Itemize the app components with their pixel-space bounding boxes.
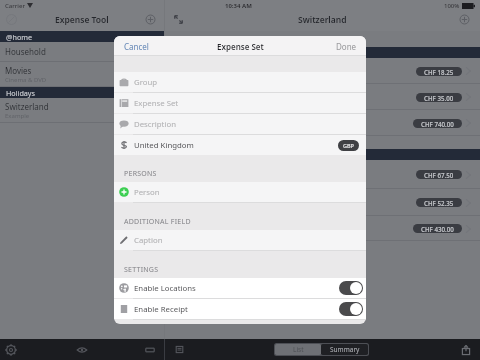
button[interactable]: List <box>275 344 321 355</box>
button[interactable]: Enable Locations <box>114 278 366 298</box>
button[interactable]: Add <box>145 14 156 25</box>
staticText: Holidays <box>6 88 35 98</box>
staticText: PERSONS <box>124 169 157 179</box>
button[interactable]: Caption <box>114 230 366 250</box>
staticText: Household <box>5 46 46 57</box>
staticText: CHF 52.35 <box>424 199 454 207</box>
staticText: Switzerland <box>5 101 49 112</box>
button[interactable]: Preview <box>76 344 88 356</box>
button[interactable]: Done <box>336 41 357 52</box>
staticText: Enable Locations <box>134 283 196 294</box>
button[interactable]: CHF 35.00 <box>165 84 480 110</box>
staticText: List <box>293 345 304 354</box>
staticText: Summary <box>330 345 360 354</box>
staticText: Expense Tool <box>55 14 109 26</box>
button[interactable]: Enable Locations <box>339 281 363 295</box>
staticText: CHF 35.00 <box>424 94 454 102</box>
button[interactable]: CHF 52.35 <box>165 189 480 216</box>
button[interactable]: CHF 740.00 <box>165 110 480 136</box>
button[interactable]: CHF 430.00 <box>165 216 480 241</box>
staticText: Expense Set <box>134 98 179 109</box>
button[interactable]: Expense Set <box>114 93 366 113</box>
button[interactable]: Summary <box>321 344 368 355</box>
staticText: CHF 18.25 <box>424 68 454 76</box>
button[interactable]: Add expense <box>459 14 470 25</box>
staticText: Group <box>134 77 158 88</box>
staticText: 10:34 AM <box>225 2 252 10</box>
staticText: Switzerland <box>298 14 347 26</box>
button[interactable]: Group <box>114 72 366 92</box>
staticText: Caption <box>134 235 163 246</box>
button[interactable]: Description <box>114 114 366 134</box>
button[interactable]: Cancel <box>124 41 149 52</box>
button[interactable]: Settings <box>5 344 17 356</box>
button[interactable]: Sync <box>144 344 156 356</box>
staticText: United Kingdom <box>134 140 194 151</box>
button[interactable]: Share <box>460 344 472 356</box>
button[interactable]: Movies <box>0 62 164 86</box>
staticText: Person <box>134 187 160 198</box>
button[interactable]: Enable Receipt <box>339 302 363 316</box>
staticText: GBP <box>343 142 354 149</box>
staticText: @home <box>6 32 33 42</box>
button[interactable]: Enable Receipt <box>114 299 366 319</box>
button[interactable]: Expand <box>173 14 184 25</box>
button[interactable]: Person <box>114 182 366 202</box>
staticText: Movies <box>5 65 32 76</box>
staticText: ADDITIONAL FIELD <box>124 217 191 227</box>
button[interactable]: CHF 18.25 <box>165 58 480 84</box>
staticText: Cinema & DVD <box>5 76 47 84</box>
button[interactable]: Switzerland <box>0 98 164 122</box>
staticText: Expense Set <box>217 41 264 52</box>
staticText: CHF 740.00 <box>421 120 454 128</box>
staticText: CHF 67.50 <box>424 171 454 179</box>
staticText: CHF 430.00 <box>421 225 454 233</box>
button[interactable]: Reports <box>174 344 185 355</box>
staticText: SETTINGS <box>124 265 159 275</box>
staticText: 100% <box>444 2 460 10</box>
staticText: Example <box>5 112 30 120</box>
button[interactable]: Household <box>0 42 164 61</box>
button[interactable]: United Kingdom <box>114 135 366 155</box>
staticText: Description <box>134 119 176 130</box>
staticText: Enable Receipt <box>134 304 188 315</box>
button[interactable]: CHF 67.50 <box>165 160 480 189</box>
staticText: Carrier <box>5 2 25 10</box>
